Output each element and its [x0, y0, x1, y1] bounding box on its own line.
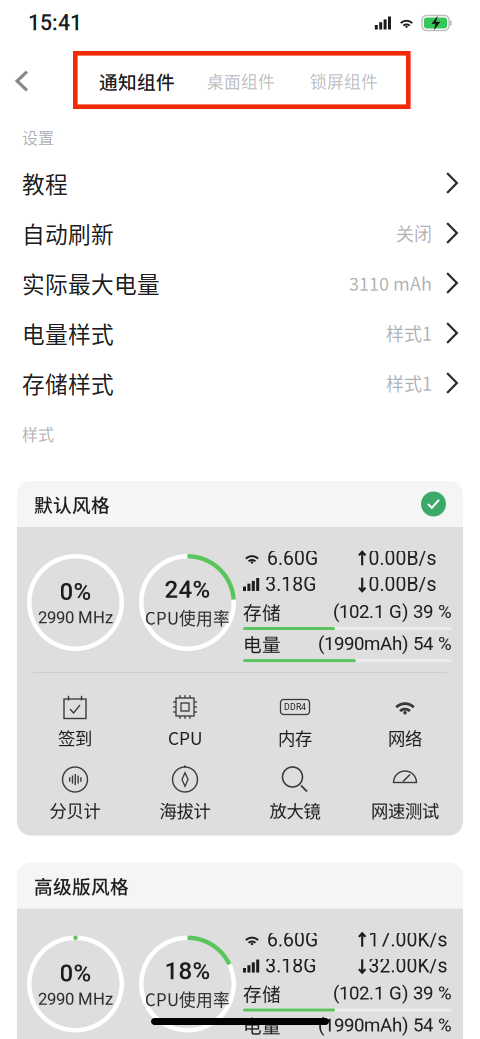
button[interactable]: 锁屏组件 — [312, 59, 376, 103]
staticText: 桌面组件 — [207, 69, 275, 93]
button[interactable]: CPU — [130, 693, 240, 749]
staticText: 分贝计 — [49, 797, 100, 823]
staticText: 6.60G — [267, 929, 318, 951]
button[interactable]: Back — [0, 59, 44, 103]
staticText: 网速测试 — [371, 797, 439, 823]
staticText: 关闭 — [396, 220, 432, 246]
staticText: 样式1 — [386, 320, 432, 346]
button[interactable]: 自动刷新 — [0, 208, 480, 258]
button[interactable]: 通知组件 — [100, 59, 174, 103]
staticText: CPU — [168, 725, 202, 750]
staticText: 电量 — [243, 630, 281, 657]
staticText: 17.00K/s — [368, 929, 447, 951]
staticText: 内存 — [278, 725, 312, 750]
staticText: 存储样式 — [22, 367, 114, 399]
staticText: 默认风格 — [34, 490, 110, 517]
staticText: 样式 — [22, 422, 54, 445]
button[interactable]: 电量样式 — [0, 308, 480, 358]
button[interactable]: 分贝计 — [20, 765, 130, 821]
staticText: 3.18G — [265, 573, 316, 596]
staticText: 18% — [164, 957, 210, 985]
staticText: 通知组件 — [99, 67, 175, 94]
button[interactable]: 桌面组件 — [210, 59, 272, 103]
button[interactable]: 网络 — [350, 693, 460, 749]
staticText: 存储 — [243, 598, 281, 625]
button[interactable]: 存储样式 — [0, 358, 480, 408]
button[interactable]: 海拔计 — [130, 765, 240, 821]
staticText: 0.00B/s — [368, 573, 436, 596]
staticText: 自动刷新 — [22, 217, 114, 249]
staticText: 24% — [164, 575, 210, 603]
staticText: 高级版风格 — [34, 872, 129, 899]
staticText: (102.1 G) 39 % — [333, 601, 452, 622]
button[interactable]: 默认风格 — [17, 481, 463, 835]
button[interactable]: 高级版风格 — [17, 862, 463, 1039]
staticText: 电量 — [243, 1011, 281, 1038]
staticText: 32.00K/s — [368, 955, 447, 977]
staticText: CPU使用率 — [145, 605, 230, 630]
staticText: 锁屏组件 — [310, 69, 378, 93]
staticText: (1990mAh) 54 % — [318, 633, 452, 654]
staticText: 15:41 — [28, 10, 82, 35]
staticText: (102.1 G) 39 % — [333, 982, 452, 1004]
button[interactable]: 放大镜 — [240, 765, 350, 821]
button[interactable]: 教程 — [0, 158, 480, 208]
staticText: 放大镜 — [269, 797, 320, 823]
staticText: 设置 — [22, 125, 54, 149]
staticText: 3.18G — [265, 955, 316, 977]
button[interactable]: DDR4 — [240, 693, 350, 749]
button[interactable]: 实际最大电量 — [0, 258, 480, 308]
button[interactable]: 签到 — [20, 693, 130, 749]
staticText: 实际最大电量 — [22, 267, 160, 299]
staticText: 样式1 — [386, 370, 432, 396]
staticText: 电量样式 — [22, 317, 114, 349]
staticText: 3110 mAh — [349, 270, 432, 296]
staticText: 0% — [59, 578, 91, 606]
staticText: 签到 — [58, 725, 92, 750]
staticText: 0% — [59, 959, 91, 987]
staticText: 2990 MHz — [38, 989, 113, 1009]
staticText: 0.00B/s — [368, 547, 436, 570]
staticText: 2990 MHz — [38, 608, 113, 627]
button[interactable]: 网速测试 — [350, 765, 460, 821]
staticText: 6.60G — [267, 547, 318, 570]
staticText: 网络 — [388, 725, 422, 750]
staticText: 存储 — [243, 979, 281, 1006]
staticText: CPU使用率 — [145, 987, 230, 1011]
staticText: 海拔计 — [159, 797, 210, 823]
staticText: DDR4 — [284, 702, 306, 712]
staticText: 教程 — [22, 167, 68, 199]
staticText: (1990mAh) 54 % — [318, 1014, 452, 1036]
